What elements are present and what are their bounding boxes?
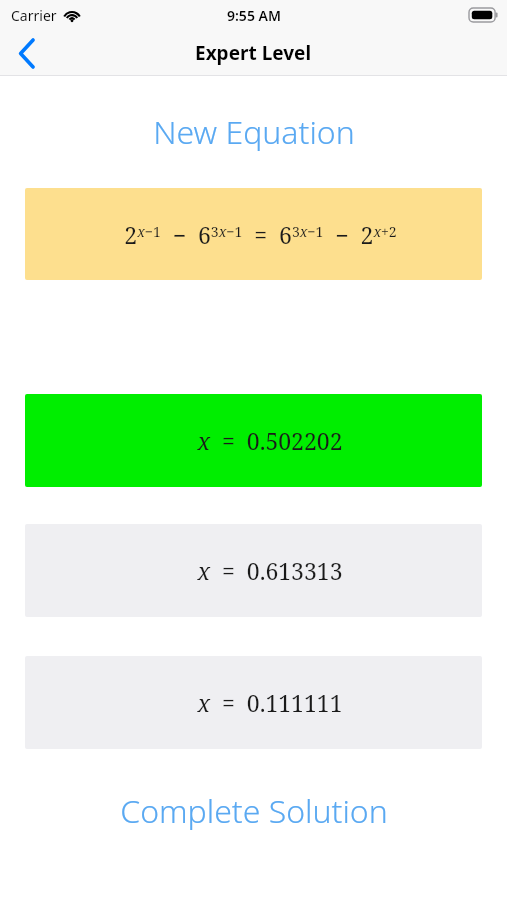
staticText: 9:55 AM xyxy=(227,6,281,25)
staticText: x = 0.111111 xyxy=(197,687,343,718)
staticText: x = 0.502202 xyxy=(197,425,343,456)
staticText: New Equation xyxy=(153,110,355,154)
staticText: 2x−1 − 63x−1 = 63x−1 − 2x+2 xyxy=(124,219,397,250)
staticText: Carrier xyxy=(11,6,57,25)
staticText: x = 0.613313 xyxy=(197,555,343,586)
button[interactable]: x = 0.111111 xyxy=(25,656,482,749)
staticText: Expert Level xyxy=(195,40,312,66)
staticText: Complete Solution xyxy=(120,789,388,833)
button[interactable]: x = 0.613313 xyxy=(25,524,482,617)
button[interactable]: Complete Solution xyxy=(0,787,507,835)
button[interactable]: Back xyxy=(0,30,54,76)
button[interactable]: New Equation xyxy=(0,108,507,156)
button[interactable]: 2x−1 − 63x−1 = 63x−1 − 2x+2 xyxy=(25,188,482,280)
button[interactable]: x = 0.502202 xyxy=(25,394,482,487)
